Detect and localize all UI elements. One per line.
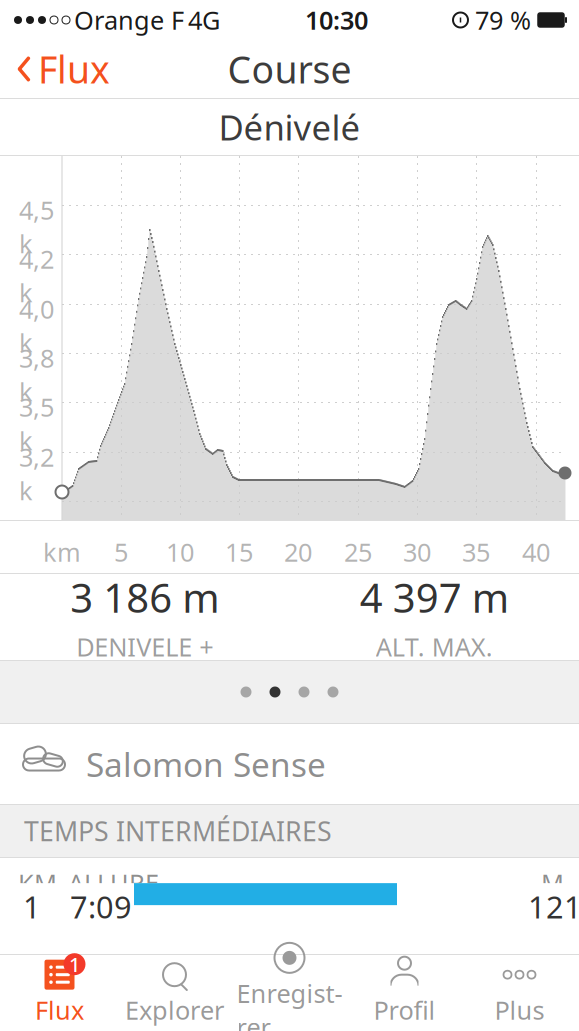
staticText: 4 397 m <box>360 571 509 624</box>
button[interactable]: 1 <box>2 958 117 1028</box>
staticText: Enregistrer <box>236 976 342 1031</box>
staticText: M <box>541 866 564 900</box>
staticText: DENIVELE + <box>76 630 213 663</box>
staticText: Flux <box>38 44 110 94</box>
staticText: 4,2k <box>19 242 54 309</box>
staticText: Plus <box>494 993 544 1027</box>
staticText: Orange F <box>74 3 184 37</box>
staticText: 121 <box>528 886 579 927</box>
staticText: 3,8k <box>19 341 54 408</box>
staticText: Dénivelé <box>218 104 360 150</box>
staticText: 20 <box>284 535 312 569</box>
staticText: 4,0k <box>19 292 54 359</box>
button[interactable]: Enregistrer <box>232 958 347 1028</box>
button[interactable]: Salomon Sense <box>0 724 579 804</box>
button[interactable]: Profil <box>347 958 462 1028</box>
staticText: Explorer <box>125 993 224 1027</box>
staticText: Course <box>227 44 351 94</box>
button[interactable]: Explorer <box>117 958 232 1028</box>
staticText: 30 <box>403 535 431 569</box>
staticText: 4,5k <box>19 193 54 260</box>
button[interactable]: Flux <box>0 36 110 102</box>
staticText: 25 <box>344 535 372 569</box>
staticText: 1 <box>23 886 41 927</box>
staticText: 35 <box>462 535 490 569</box>
staticText: KM <box>18 866 57 900</box>
staticText: TEMPS INTERMÉDIAIRES <box>24 813 332 849</box>
staticText: Profil <box>373 993 435 1027</box>
staticText: Salomon Sense <box>86 742 326 786</box>
staticText: Flux <box>35 993 84 1027</box>
staticText: 10:30 <box>305 3 368 37</box>
staticText: 3,5k <box>19 390 54 457</box>
staticText: ALLURE <box>68 866 159 900</box>
button[interactable]: Plus <box>462 958 577 1028</box>
staticText: 79 % <box>475 3 531 37</box>
staticText: 40 <box>522 535 550 569</box>
staticText: 3 186 m <box>70 571 219 624</box>
staticText: 1 <box>69 951 80 977</box>
staticText: km <box>43 535 81 569</box>
staticText: 10 <box>166 535 194 569</box>
staticText: 7:09 <box>70 886 132 927</box>
staticText: 4G <box>188 3 220 37</box>
staticText: 15 <box>225 535 253 569</box>
staticText: 3,2k <box>19 440 54 507</box>
staticText: ALT. MAX. <box>376 630 493 663</box>
staticText: 5 <box>114 535 128 569</box>
